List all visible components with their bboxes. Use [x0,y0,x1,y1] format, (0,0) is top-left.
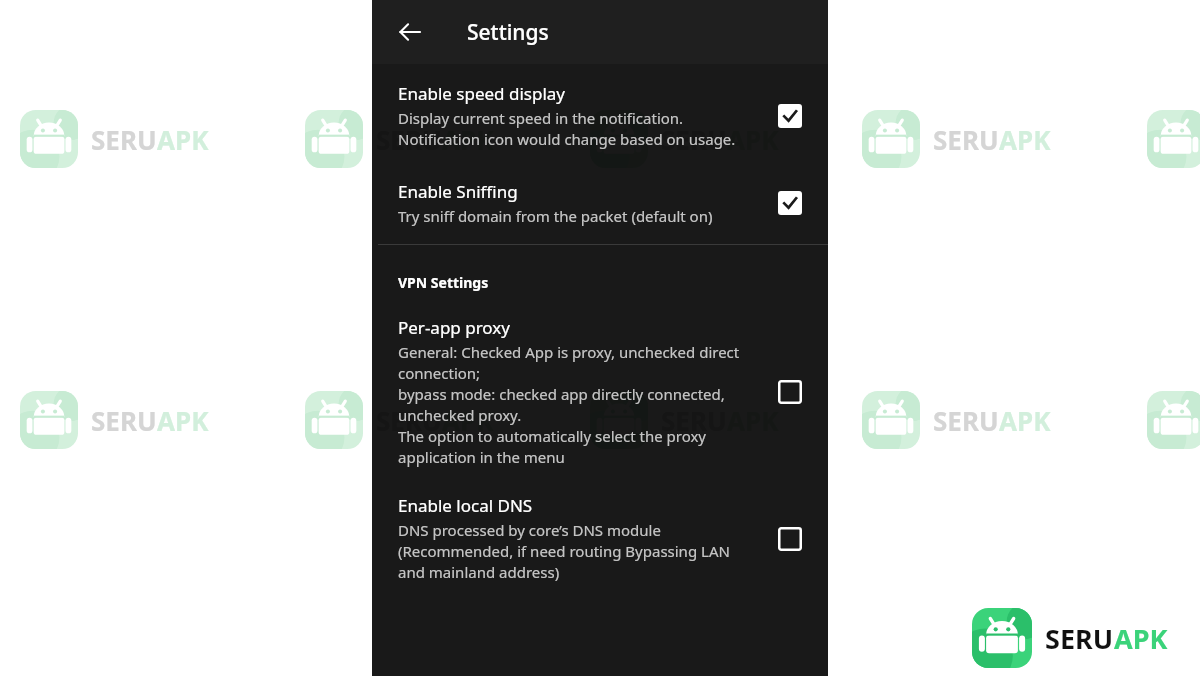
button[interactable]: Unchecked [770,519,810,559]
staticText: SERU [933,122,999,157]
button[interactable]: Checked [770,96,810,136]
button[interactable]: Enable Sniffing [372,166,828,244]
staticText: SERU [933,403,999,438]
staticText: APK [157,122,209,157]
staticText: General: Checked App is proxy, unchecked… [398,342,758,468]
staticText: SERU [91,122,157,157]
staticText: Enable Sniffing [398,180,518,203]
button[interactable]: Per-app proxy [372,302,828,482]
staticText: SERU [661,403,727,438]
staticText: APK [999,122,1051,157]
button[interactable]: Unchecked [770,372,810,412]
button[interactable]: Checked [770,183,810,223]
staticText: APK [442,122,494,157]
staticText: Enable local DNS [398,494,533,517]
staticText: SERU [376,403,442,438]
staticText: SERU [376,122,442,157]
staticText: Enable speed display [398,82,566,105]
staticText: Per-app proxy [398,316,510,339]
staticText: Try sniff domain from the packet (defaul… [398,206,713,226]
staticText: APK [999,403,1051,438]
staticText: APK [727,122,779,157]
button[interactable]: Back [386,8,434,56]
button[interactable]: Enable local DNS [372,482,828,597]
staticText: SERU [91,403,157,438]
staticText: APK [157,403,209,438]
staticText: APK [1114,620,1168,657]
staticText: SERU [661,122,727,157]
staticText: Display current speed in the notificatio… [398,108,758,150]
staticText: Settings [467,18,549,47]
button[interactable]: Enable speed display [372,64,828,166]
staticText: APK [442,403,494,438]
staticText: SERU [1045,620,1114,657]
staticText: VPN Settings [398,273,489,292]
staticText: DNS processed by core’s DNS module (Reco… [398,520,758,583]
